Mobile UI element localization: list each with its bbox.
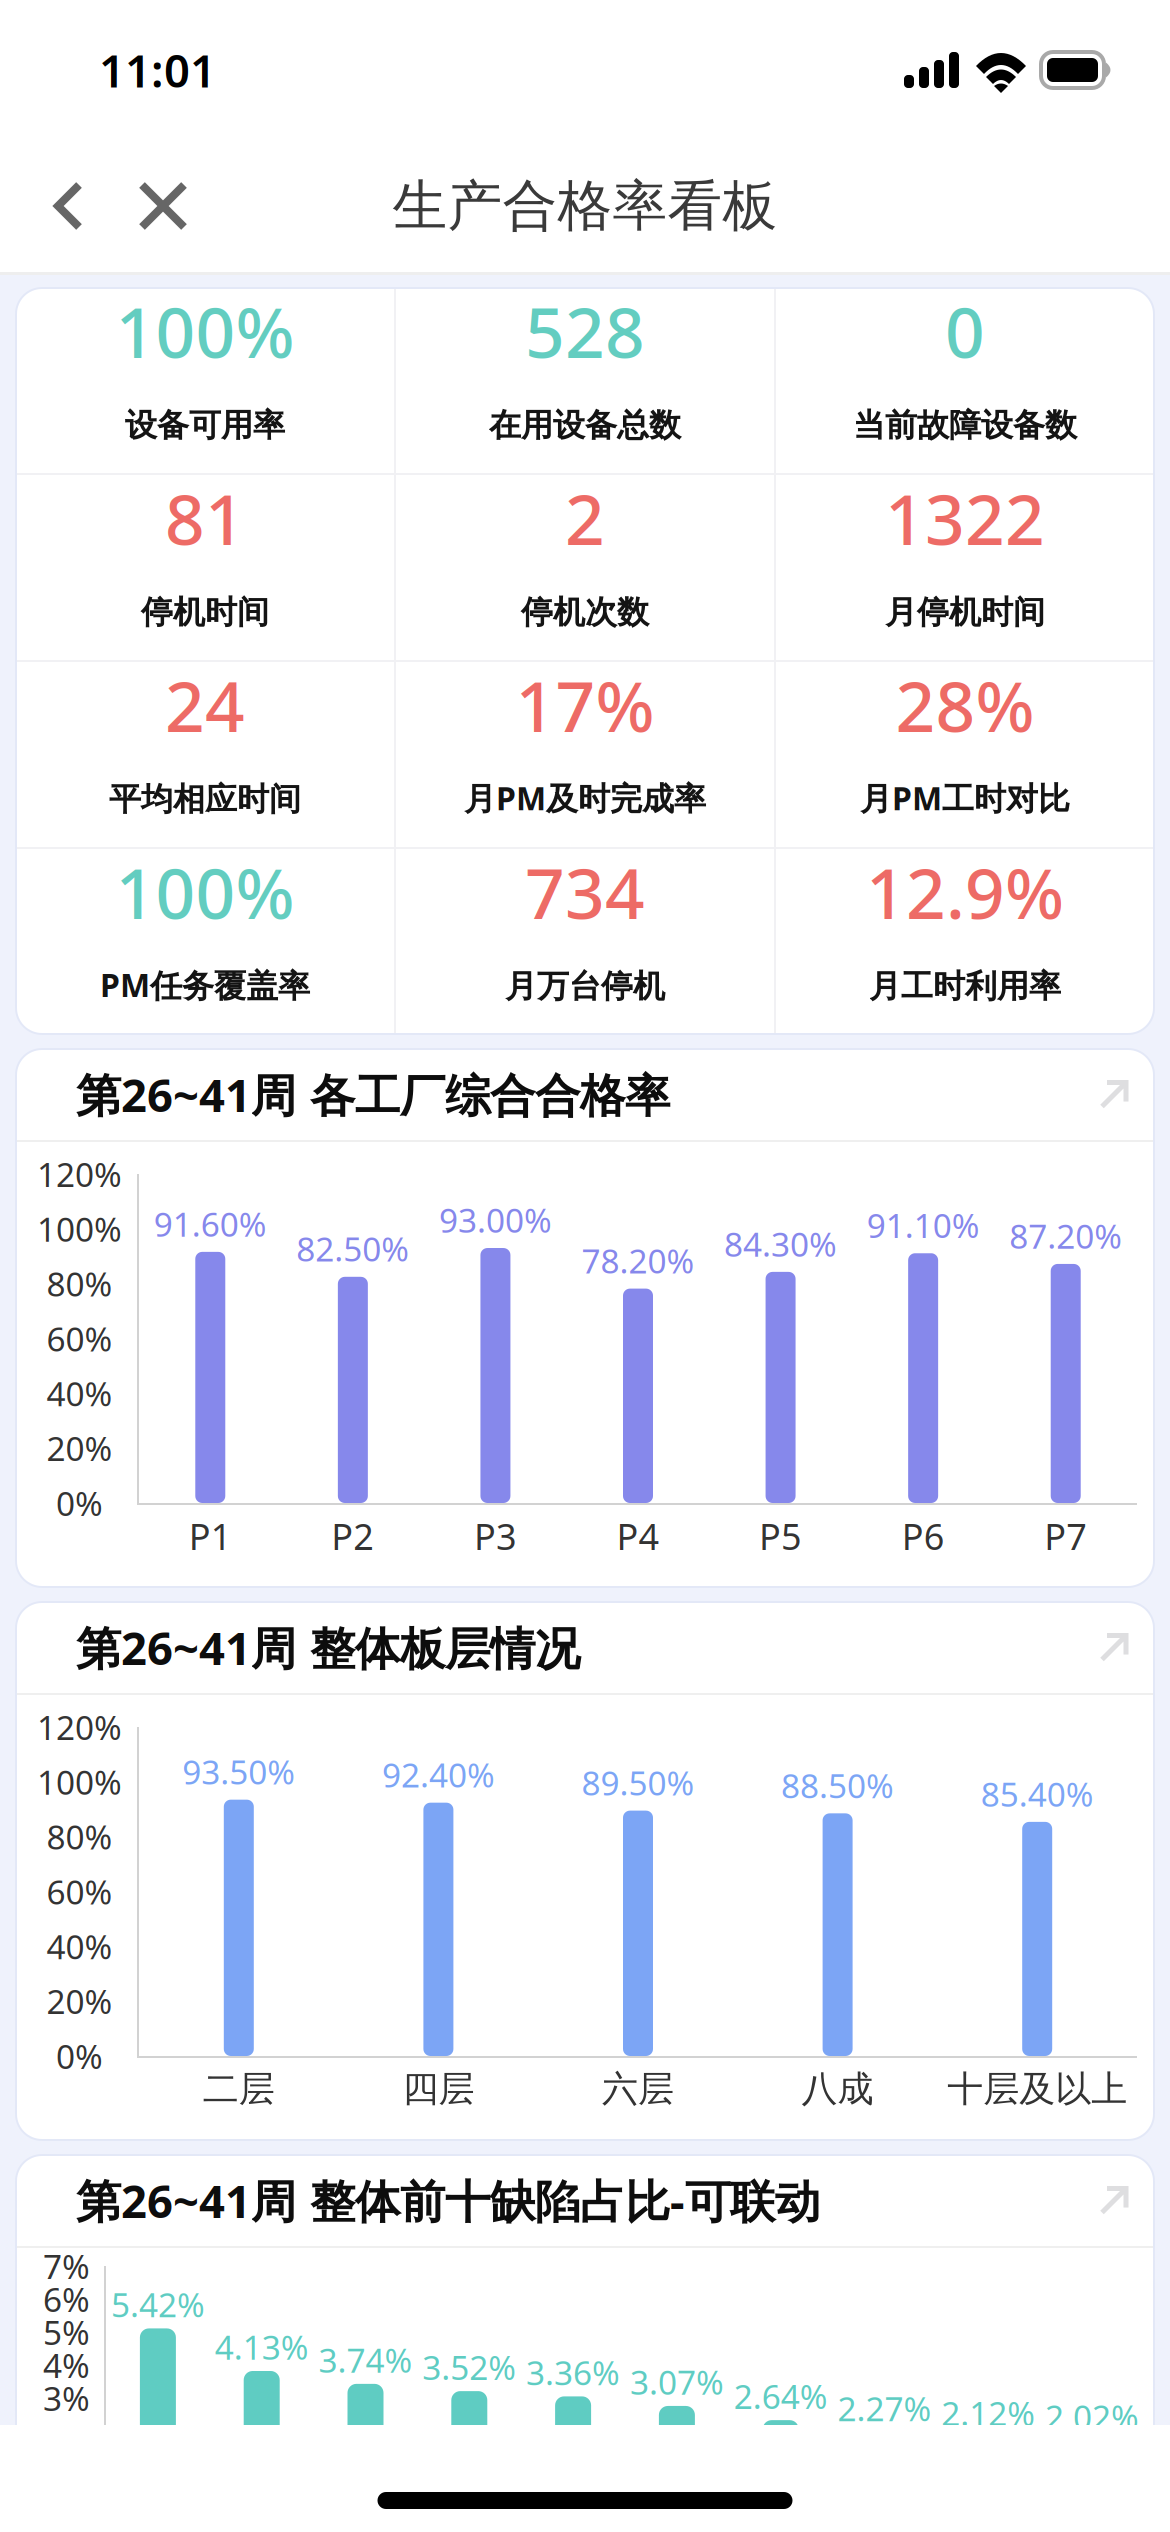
staticText: 92.40% [382, 1752, 495, 1797]
staticText: 六层 [602, 2067, 674, 2111]
staticText: 0% [56, 1481, 103, 1525]
staticText: 3.52% [422, 2345, 516, 2389]
staticText: 40% [46, 1924, 112, 1968]
staticText: 停机次数 [521, 593, 649, 632]
staticText: P7 [1044, 1512, 1087, 1560]
staticText: 80% [46, 1261, 112, 1306]
button[interactable]: Back [0, 160, 109, 252]
staticText: 3.74% [318, 2338, 412, 2382]
staticText: 3% [43, 2376, 90, 2420]
staticText: 28% [895, 659, 1034, 751]
staticText: P3 [474, 1512, 517, 1560]
staticText: 1322 [885, 472, 1045, 564]
staticText: P2 [331, 1512, 374, 1560]
staticText: 月PM及时完成率 [464, 776, 706, 819]
staticText: P4 [616, 1512, 659, 1560]
staticText: 十层及以上 [947, 2067, 1127, 2111]
staticText: 2.27% [837, 2386, 931, 2430]
staticText: 第26~41周 整体前十缺陷占比-可联动 [76, 2170, 820, 2231]
staticText: 91.60% [154, 1202, 267, 1246]
staticText: 平均相应时间 [109, 780, 301, 819]
staticText: 二层 [203, 2067, 275, 2111]
staticText: 93.00% [439, 1198, 552, 1242]
button[interactable]: Close [109, 160, 204, 252]
staticText: 20% [46, 1426, 112, 1470]
staticText: 60% [46, 1316, 112, 1361]
staticText: 5.42% [111, 2282, 205, 2326]
staticText: 在用设备总数 [489, 406, 681, 445]
staticText: 17% [515, 659, 654, 751]
staticText: 734 [525, 846, 645, 938]
staticText: PM任务覆盖率 [100, 963, 310, 1006]
staticText: 85.40% [981, 1772, 1094, 1816]
staticText: 100% [115, 285, 294, 377]
staticText: 第26~41周 各工厂综合合格率 [76, 1064, 670, 1125]
staticText: 82.50% [296, 1226, 409, 1271]
staticText: 生产合格率看板 [392, 172, 777, 239]
staticText: 5% [43, 2310, 90, 2354]
staticText: 528 [525, 285, 645, 377]
button[interactable]: Expand chart [1084, 1062, 1144, 1126]
staticText: 2.64% [734, 2374, 828, 2418]
staticText: 月停机时间 [885, 593, 1045, 632]
staticText: 89.50% [581, 1760, 694, 1805]
staticText: P6 [902, 1512, 945, 1560]
staticText: 24 [165, 659, 245, 751]
staticText: 40% [46, 1371, 112, 1415]
staticText: 0 [945, 285, 985, 377]
staticText: 当前故障设备数 [853, 406, 1077, 445]
staticText: 第26~41周 整体板层情况 [76, 1617, 580, 1678]
staticText: 88.50% [781, 1763, 894, 1807]
staticText: 91.10% [867, 1203, 980, 1247]
staticText: P1 [189, 1512, 232, 1560]
staticText: 120% [37, 1152, 122, 1196]
staticText: 87.20% [1009, 1214, 1122, 1258]
staticText: 100% [37, 1760, 122, 1804]
staticText: 2 [565, 472, 605, 564]
staticText: 100% [115, 846, 294, 938]
staticText: 93.50% [182, 1749, 295, 1794]
staticText: 2.02% [1045, 2394, 1139, 2439]
staticText: 3.07% [630, 2360, 724, 2404]
staticText: 月万台停机 [505, 967, 665, 1006]
staticText: 4.13% [215, 2325, 309, 2369]
staticText: 2.12% [941, 2391, 1035, 2435]
staticText: 120% [37, 1705, 122, 1749]
staticText: 11:01 [99, 40, 216, 100]
button[interactable]: Expand chart [1084, 2168, 1144, 2232]
button[interactable]: Expand chart [1084, 1615, 1144, 1679]
staticText: 设备可用率 [125, 406, 285, 445]
staticText: 八成 [802, 2067, 874, 2111]
staticText: 7% [43, 2244, 90, 2288]
staticText: 84.30% [724, 1222, 837, 1266]
staticText: 3.36% [526, 2350, 620, 2394]
staticText: 20% [46, 1979, 112, 2023]
staticText: 78.20% [581, 1238, 694, 1283]
staticText: 60% [46, 1869, 112, 1914]
staticText: 月工时利用率 [869, 967, 1061, 1006]
staticText: 12.9% [866, 846, 1064, 938]
staticText: 100% [37, 1207, 122, 1251]
staticText: 0% [56, 2034, 103, 2078]
staticText: 80% [46, 1814, 112, 1859]
staticText: 四层 [402, 2067, 474, 2111]
staticText: P5 [759, 1512, 802, 1560]
staticText: 月PM工时对比 [860, 776, 1070, 819]
staticText: 4% [43, 2343, 90, 2387]
staticText: 81 [165, 472, 245, 564]
staticText: 停机时间 [141, 593, 269, 632]
staticText: 6% [43, 2277, 90, 2321]
